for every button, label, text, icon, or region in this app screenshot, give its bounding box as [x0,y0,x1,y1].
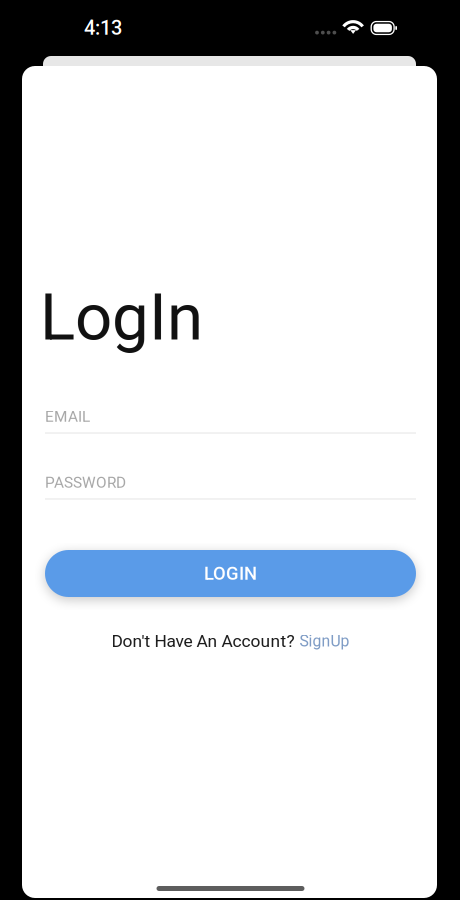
button[interactable]: SignUp [299,632,349,650]
staticText: SignUp [299,632,349,650]
staticText: EMAIL [45,408,90,426]
staticText: PASSWORD [45,473,126,491]
staticText: LogIn [40,279,203,356]
button[interactable]: LOGIN [45,550,416,597]
staticText: 4:13 [84,16,122,40]
staticText: LOGIN [204,563,257,584]
staticText: Don't Have An Account? [111,631,294,651]
